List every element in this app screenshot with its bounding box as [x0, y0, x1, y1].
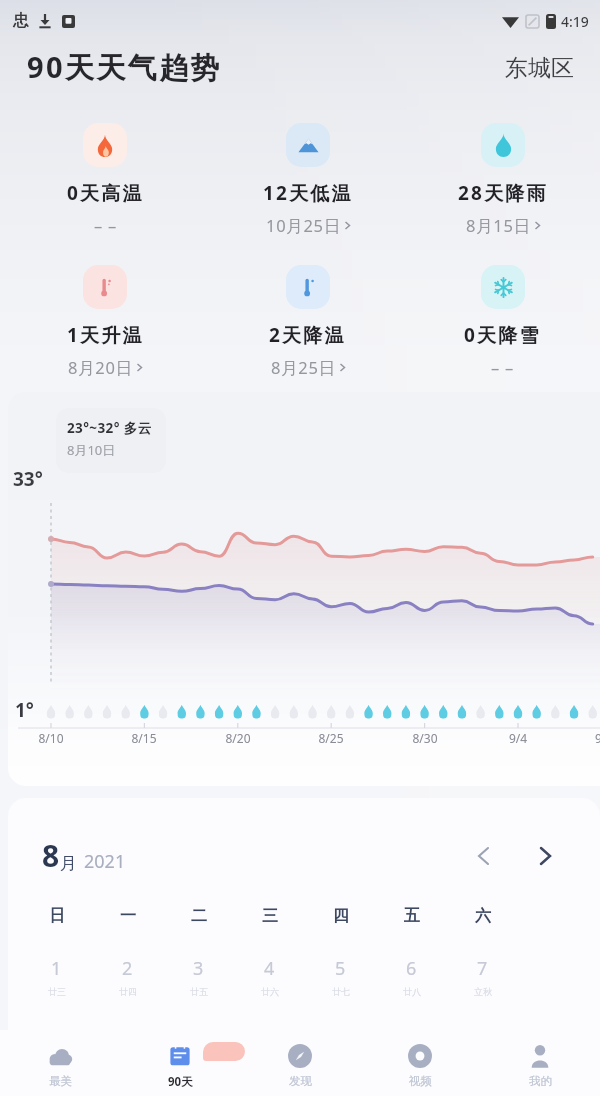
staticText: 28天降雨 [458, 180, 548, 206]
staticText: 廿六 [261, 986, 279, 997]
staticText: 5 [335, 956, 346, 981]
staticText: 90天 [168, 1074, 193, 1090]
staticText: 4 [264, 956, 275, 981]
staticText: 廿四 [119, 986, 137, 997]
staticText: 8 [42, 835, 60, 876]
staticText: 90天天气趋势 [27, 47, 222, 87]
button[interactable]: 6 [376, 956, 447, 997]
staticText: 2天降温 [269, 322, 346, 348]
button[interactable]: 28天降雨 [405, 123, 600, 237]
staticText: 2 [122, 956, 133, 981]
button[interactable]: 0天降雪 [405, 265, 600, 378]
staticText: 1° [15, 697, 34, 723]
button[interactable]: 1 [21, 956, 92, 997]
staticText: 12天低温 [263, 180, 353, 206]
button[interactable]: Next month [528, 839, 562, 873]
button[interactable]: 12天低温 [210, 123, 405, 237]
button[interactable]: 7 [447, 956, 518, 997]
staticText: 8月20日 [68, 356, 133, 379]
staticText: 一 [120, 906, 136, 926]
staticText: 东城区 [505, 54, 574, 83]
button[interactable]: 2 [92, 956, 163, 997]
staticText: 四 [333, 906, 349, 926]
staticText: 2021 [84, 849, 126, 874]
button[interactable]: 5 [305, 956, 376, 997]
staticText: 立秋 [474, 986, 492, 997]
staticText: 1天升温 [67, 322, 144, 348]
staticText: 7 [477, 956, 488, 981]
button[interactable]: 发现 [240, 1030, 360, 1096]
staticText: 三 [262, 906, 278, 926]
staticText: 9 [595, 730, 600, 746]
staticText: 廿三 [48, 986, 66, 997]
staticText: 8月15日 [466, 214, 531, 237]
staticText: 0天高温 [67, 180, 144, 206]
staticText: 六 [475, 906, 491, 926]
staticText: 五 [404, 906, 420, 926]
staticText: 廿七 [332, 986, 350, 997]
button[interactable]: 1天升温 [0, 265, 210, 379]
staticText: 月 [60, 853, 77, 874]
staticText: 8/30 [409, 730, 441, 746]
staticText: 0天降雪 [464, 322, 541, 348]
staticText: 33° [13, 466, 43, 492]
staticText: 日 [49, 906, 65, 926]
staticText: 8/20 [222, 730, 254, 746]
staticText: 8/15 [128, 730, 160, 746]
staticText: 10月25日 [266, 214, 341, 237]
staticText: 廿五 [190, 986, 208, 997]
staticText: 9/4 [502, 730, 534, 746]
staticText: 忠 [13, 11, 29, 31]
staticText: 廿八 [403, 986, 421, 997]
staticText: 8/25 [315, 730, 347, 746]
staticText: 6 [406, 956, 417, 981]
button[interactable]: 0天高温 [0, 123, 210, 236]
button[interactable]: 2天降温 [210, 265, 405, 379]
staticText: 我的 [529, 1074, 552, 1088]
staticText: 发现 [289, 1074, 312, 1088]
staticText: – – [94, 214, 117, 236]
staticText: 8月10日 [67, 441, 116, 459]
staticText: 最美 [49, 1074, 72, 1088]
staticText: 二 [191, 906, 207, 926]
button[interactable]: 3 [163, 956, 234, 997]
staticText: – – [491, 356, 514, 378]
staticText: 3 [193, 956, 204, 981]
button[interactable]: 最美 [0, 1030, 120, 1096]
button[interactable]: 视频 [360, 1030, 480, 1096]
staticText: 视频 [409, 1074, 432, 1088]
staticText: 8月25日 [271, 356, 336, 379]
staticText: 8/10 [35, 730, 67, 746]
button[interactable]: 我的 [480, 1030, 600, 1096]
staticText: 4:19 [561, 12, 589, 31]
button[interactable]: Previous month [466, 839, 500, 873]
staticText: 1 [51, 956, 62, 981]
button[interactable]: 90天 [120, 1030, 240, 1096]
button[interactable]: 4 [234, 956, 305, 997]
staticText: 23°~32° 多云 [67, 419, 152, 437]
